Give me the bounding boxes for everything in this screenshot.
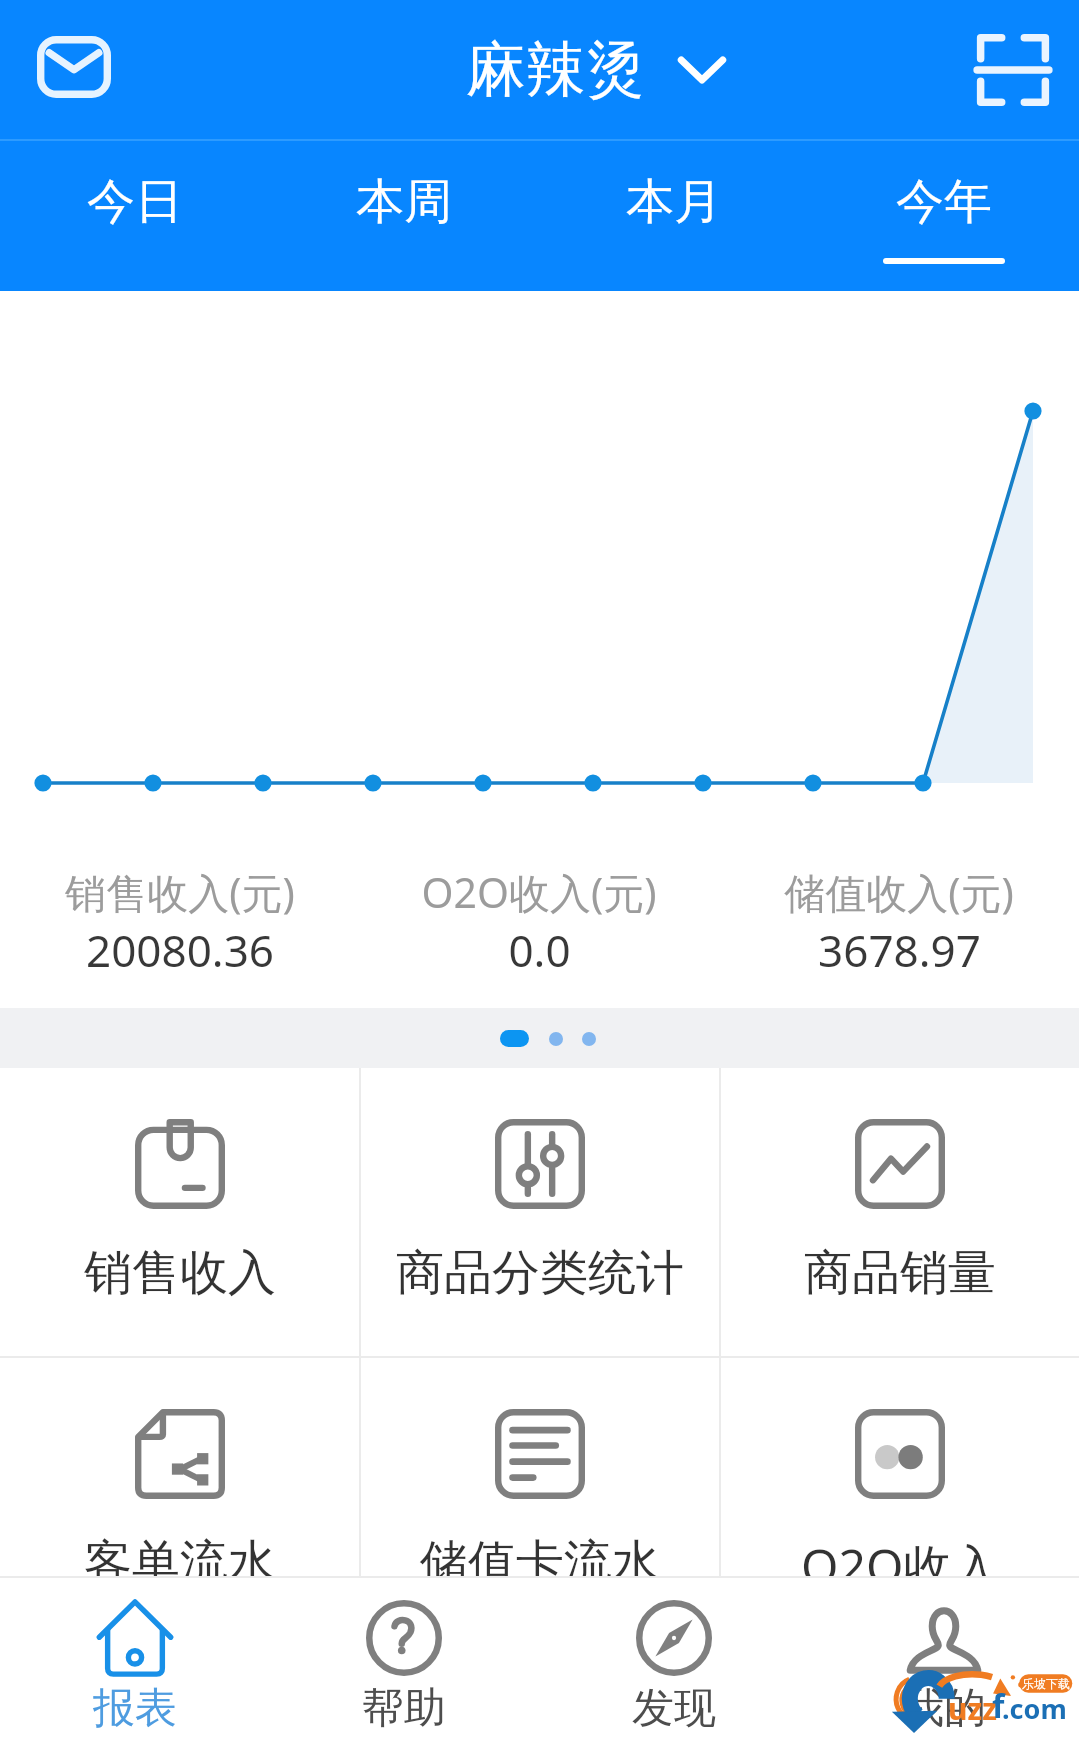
staticText: 本月 xyxy=(626,172,722,232)
button[interactable]: 报表 xyxy=(0,1576,269,1738)
button[interactable]: 今年 xyxy=(809,139,1079,291)
staticText: 乐坡下载 xyxy=(1022,1676,1070,1691)
staticText: 销售收入(元) xyxy=(65,864,295,920)
button[interactable]: 麻辣烫 xyxy=(466,32,727,108)
staticText: 今年 xyxy=(896,172,992,232)
button[interactable]: 帮助 xyxy=(269,1576,539,1738)
button[interactable]: O2O收入 xyxy=(721,1358,1079,1646)
staticText: 帮助 xyxy=(362,1682,446,1735)
staticText: 储值收入(元) xyxy=(784,864,1014,920)
staticText: O2O收入 xyxy=(801,1533,1000,1599)
button[interactable]: 我的 xyxy=(809,1576,1079,1738)
staticText: 发现 xyxy=(632,1682,716,1735)
button[interactable]: 本月 xyxy=(539,139,809,291)
staticText: O2O收入(元) xyxy=(421,864,657,920)
staticText: 本周 xyxy=(356,172,452,232)
button[interactable]: 客单流水 xyxy=(0,1358,359,1646)
button[interactable]: 商品销量 xyxy=(721,1068,1079,1356)
staticText: 20080.36 xyxy=(86,920,274,980)
staticText: f xyxy=(992,1684,1005,1728)
staticText: 今日 xyxy=(87,172,183,232)
button[interactable]: 本周 xyxy=(269,139,539,291)
staticText: 销售收入 xyxy=(84,1243,276,1303)
button[interactable]: 商品分类统计 xyxy=(361,1068,719,1356)
button[interactable]: Page 1 xyxy=(500,1030,529,1047)
staticText: 3678.97 xyxy=(818,920,981,980)
button[interactable]: Scan QR code xyxy=(963,20,1063,120)
staticText: 客单流水 xyxy=(84,1533,276,1593)
button[interactable]: 发现 xyxy=(539,1576,809,1738)
button[interactable]: 储值卡流水 xyxy=(361,1358,719,1646)
staticText: 商品分类统计 xyxy=(396,1243,684,1303)
staticText: .com xyxy=(1002,1690,1067,1727)
button[interactable]: 今日 xyxy=(0,139,269,291)
button[interactable]: Page 2 xyxy=(549,1032,563,1046)
staticText: 麻辣烫 xyxy=(466,32,646,108)
staticText: uzz xyxy=(948,1688,998,1729)
staticText: 0.0 xyxy=(508,920,571,980)
staticText: 储值卡流水 xyxy=(420,1533,660,1593)
staticText: 报表 xyxy=(93,1682,177,1735)
button[interactable]: Page 3 xyxy=(582,1032,596,1046)
button[interactable]: 销售收入 xyxy=(0,1068,359,1356)
staticText: 商品销量 xyxy=(804,1243,996,1303)
button[interactable]: Messages xyxy=(24,17,124,117)
staticText: 我的 xyxy=(902,1682,986,1735)
